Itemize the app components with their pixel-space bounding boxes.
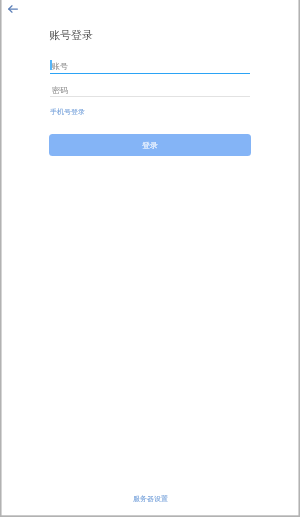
staticText: 账号 — [52, 61, 68, 71]
button[interactable]: Back — [2, 0, 23, 19]
staticText: 登录 — [142, 140, 158, 150]
button[interactable]: 服务器设置 — [133, 494, 168, 503]
staticText: 密码 — [52, 85, 68, 95]
staticText: 账号登录 — [49, 28, 93, 42]
button[interactable]: 手机号登录 — [50, 107, 85, 116]
staticText: 手机号登录 — [50, 107, 85, 116]
button[interactable]: 登录 — [49, 134, 251, 156]
staticText: 服务器设置 — [133, 494, 168, 503]
